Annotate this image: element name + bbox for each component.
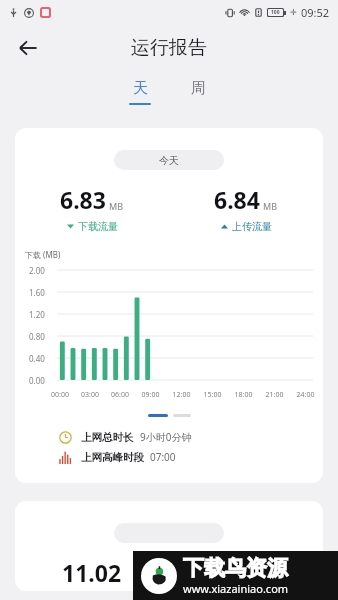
button[interactable]: 11.02 (15, 501, 323, 591)
staticText: 1.60 (29, 287, 45, 298)
button[interactable]: 天 (124, 72, 156, 114)
staticText: 09:52 (301, 5, 330, 20)
button[interactable]: 今天 (15, 128, 323, 483)
staticText: ✛ (290, 8, 297, 17)
staticText: 0.00 (29, 375, 45, 386)
staticText: 下载鸟资源 (183, 555, 288, 581)
staticText: 运行报告 (131, 36, 207, 60)
staticText: MB (109, 200, 124, 212)
staticText: 07:00 (150, 450, 176, 464)
staticText: 18:00 (228, 390, 259, 400)
button[interactable]: 周 (182, 72, 214, 114)
staticText: 2.00 (29, 265, 45, 276)
staticText: 11.02 (62, 557, 122, 588)
button[interactable]: 上网总时长 (59, 430, 323, 444)
staticText: 12:00 (166, 390, 197, 400)
staticText: www.xiazainiao.com (183, 581, 289, 596)
staticText: 100 (271, 9, 280, 16)
staticText: MB (263, 200, 278, 212)
staticText: 6.84 (214, 184, 260, 215)
staticText: 下载 (MB) (25, 249, 61, 260)
staticText: 0.40 (29, 353, 45, 364)
staticText: 24:00 (290, 390, 321, 400)
staticText: 09:00 (135, 390, 166, 400)
staticText: 上网总时长 (81, 431, 134, 444)
staticText: 上网高峰时段 (81, 451, 144, 464)
staticText: 03:00 (75, 390, 105, 400)
staticText: 6.83 (60, 184, 106, 215)
staticText: 0.80 (29, 331, 45, 342)
staticText: 15:00 (197, 390, 228, 400)
staticText: 1.20 (29, 309, 45, 320)
button[interactable]: 今天 (114, 150, 224, 170)
staticText: 天 (133, 79, 148, 98)
staticText: 00:00 (45, 390, 75, 400)
staticText: 21:00 (259, 390, 290, 400)
button[interactable]: Back (8, 28, 48, 68)
staticText: 06:00 (105, 390, 135, 400)
staticText: 9小时0分钟 (140, 430, 192, 444)
staticText: 上传流量 (232, 220, 272, 233)
staticText: 下载流量 (78, 220, 118, 233)
staticText: 今天 (159, 154, 179, 167)
button[interactable]: 上网高峰时段 (59, 450, 323, 464)
staticText: 周 (191, 79, 206, 98)
